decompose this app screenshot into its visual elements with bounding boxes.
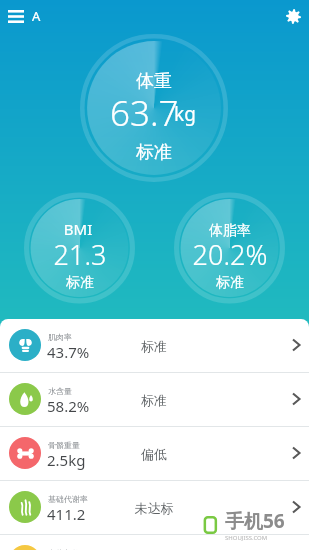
button[interactable]: 基础代谢率	[0, 481, 309, 534]
staticText: 水含量	[48, 386, 72, 396]
staticText: 43.7%	[47, 342, 90, 362]
staticText: 2.5kg	[47, 450, 86, 470]
staticText: 手机56	[225, 508, 285, 534]
staticText: 63.7	[110, 89, 179, 137]
staticText: 肌肉率	[48, 332, 72, 342]
button[interactable]: 水含量	[0, 373, 309, 426]
staticText: 偏低	[104, 446, 204, 462]
staticText: 体脂率	[175, 222, 285, 240]
staticText: 21.3	[25, 236, 135, 273]
staticText: 标准	[94, 141, 214, 164]
staticText: 未达标	[104, 500, 204, 516]
staticText: 20.2%	[175, 236, 285, 273]
staticText: 身体年龄	[48, 548, 80, 550]
staticText: A	[32, 7, 41, 25]
staticText: 58.2%	[47, 396, 90, 416]
staticText: kg	[174, 101, 196, 127]
staticText: SHOUJISS.COM	[225, 534, 268, 542]
staticText: BMI	[23, 219, 133, 239]
button[interactable]: 骨骼重量	[0, 427, 309, 480]
staticText: 基础代谢率	[48, 494, 88, 504]
staticText: 标准	[104, 338, 204, 354]
staticText: 411.2	[47, 504, 86, 524]
staticText: 骨骼重量	[48, 440, 80, 450]
button[interactable]: 身体年龄	[0, 535, 309, 550]
staticText: 体重	[94, 70, 214, 93]
button[interactable]: 肌肉率	[0, 319, 309, 372]
button[interactable]: Menu	[0, 0, 32, 32]
staticText: 标准	[104, 392, 204, 408]
staticText: 标准	[175, 274, 285, 292]
staticText: 标准	[25, 274, 135, 292]
button[interactable]: Settings	[277, 0, 309, 32]
